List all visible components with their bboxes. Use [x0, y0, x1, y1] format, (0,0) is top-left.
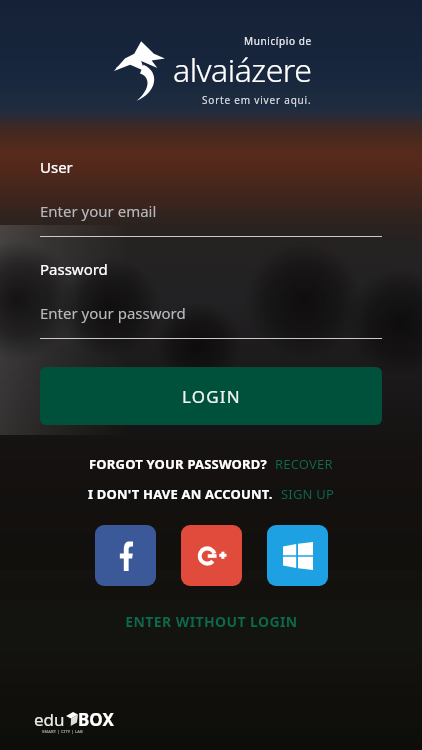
staticText: I DON'T HAVE AN ACCOUNT. [88, 485, 273, 503]
button[interactable]: RECOVER [275, 455, 333, 473]
staticText: Município de [244, 34, 312, 48]
staticText: SMART | CITY | LAB [42, 729, 83, 734]
button[interactable]: LOGIN [40, 367, 382, 425]
staticText: User [40, 157, 73, 177]
staticText: FORGOT YOUR PASSWORD? [89, 455, 267, 473]
staticText: SIGN UP [281, 485, 335, 503]
staticText: BOX [78, 708, 114, 731]
staticText: edu [34, 708, 65, 731]
button[interactable]: Sign in with Google Plus [181, 525, 242, 586]
staticText: Password [40, 259, 108, 279]
button[interactable]: SIGN UP [281, 485, 335, 503]
button[interactable]: Sign in with Microsoft [267, 525, 328, 586]
button[interactable]: Sign in with Facebook [95, 525, 156, 586]
staticText: alvaiázere [173, 48, 312, 92]
staticText: RECOVER [275, 455, 333, 473]
staticText: LOGIN [182, 385, 241, 408]
staticText: Sorte em viver aqui. [202, 93, 312, 107]
staticText: ENTER WITHOUT LOGIN [125, 612, 298, 631]
staticText: Enter your password [40, 303, 186, 323]
button[interactable]: ENTER WITHOUT LOGIN [0, 612, 422, 631]
staticText: Enter your email [40, 201, 157, 221]
